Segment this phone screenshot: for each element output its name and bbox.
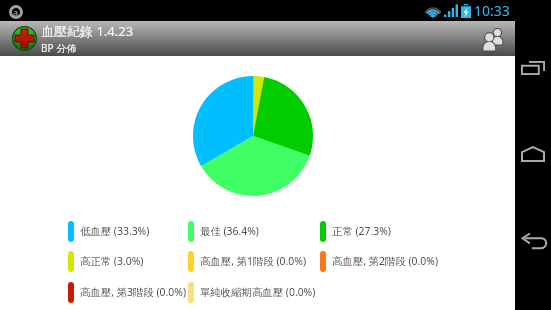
staticText: 單純收縮期高血壓 (0.0%) — [200, 285, 316, 299]
button[interactable]: Home — [515, 136, 551, 172]
button[interactable]: 高血壓, 第3階段 (0.0%) — [68, 282, 187, 303]
button[interactable]: 高血壓, 第1階段 (0.0%) — [188, 251, 307, 272]
staticText: 10:33 — [474, 1, 510, 20]
button[interactable]: 正常 (27.3%) — [320, 221, 391, 242]
staticText: BP 分佈 — [41, 41, 77, 55]
staticText: 高血壓, 第1階段 (0.0%) — [200, 254, 307, 268]
staticText: 高血壓, 第2階段 (0.0%) — [332, 254, 439, 268]
staticText: 高血壓, 第3階段 (0.0%) — [80, 285, 187, 299]
staticText: a — [13, 6, 19, 18]
button[interactable]: 高正常 (3.0%) — [68, 251, 144, 272]
button[interactable]: Back — [516, 223, 551, 259]
staticText: 血壓紀錄 1.4.23 — [41, 22, 134, 40]
button[interactable]: 最佳 (36.4%) — [188, 221, 259, 242]
button[interactable]: 高血壓, 第2階段 (0.0%) — [320, 251, 439, 272]
staticText: 最佳 (36.4%) — [200, 224, 259, 238]
button[interactable]: Profiles — [476, 22, 510, 56]
button[interactable]: Recent apps — [515, 50, 551, 86]
button[interactable]: 單純收縮期高血壓 (0.0%) — [188, 282, 316, 303]
staticText: 高正常 (3.0%) — [80, 254, 144, 268]
button[interactable]: 低血壓 (33.3%) — [68, 221, 150, 242]
staticText: 低血壓 (33.3%) — [80, 224, 150, 238]
staticText: 正常 (27.3%) — [332, 224, 391, 238]
